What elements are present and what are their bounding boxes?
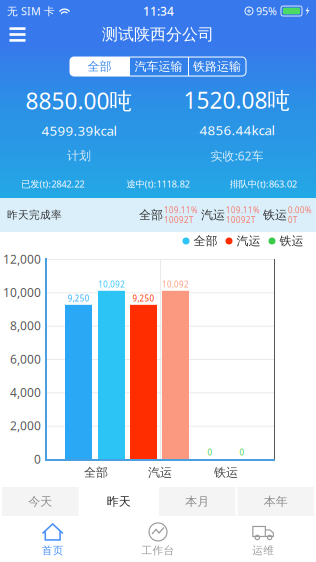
button[interactable]: 汽车运输 [129, 57, 188, 76]
staticText: 铁路运输 [193, 59, 241, 74]
staticText: 昨天完成率 [7, 208, 62, 221]
staticText: 运维 [252, 544, 274, 557]
staticText: 0 [239, 447, 244, 458]
staticText: 全部 [139, 208, 163, 222]
staticText: 铁运 [279, 234, 303, 248]
staticText: 今天 [28, 494, 52, 509]
staticText: 本年 [264, 494, 288, 509]
staticText: 无 SIM 卡 [7, 4, 55, 18]
staticText: 9,250 [67, 293, 89, 304]
staticText: 已发(t):2842.22 [21, 178, 84, 190]
button[interactable]: 首页 [0, 518, 105, 562]
staticText: 8,000 [10, 318, 41, 334]
staticText: 全部 [193, 234, 217, 248]
staticText: 10,000 [3, 284, 41, 300]
button[interactable]: 全部 [70, 57, 129, 76]
button[interactable]: Menu [1, 22, 34, 47]
staticText: 昨天 [107, 494, 131, 509]
staticText: 4599.39kcal [41, 122, 116, 139]
staticText: 全部 [84, 465, 108, 480]
staticText: 4856.44kcal [199, 121, 274, 139]
button[interactable]: 工作台 [105, 518, 211, 562]
staticText: 0T [288, 214, 297, 225]
staticText: 4,000 [10, 384, 41, 400]
staticText: 汽运 [236, 234, 260, 248]
staticText: 首页 [42, 544, 64, 557]
staticText: 本月 [185, 494, 209, 509]
staticText: 0 [34, 451, 41, 467]
staticText: 铁运 [263, 208, 287, 222]
staticText: 汽车运输 [134, 59, 182, 74]
staticText: 汽运 [148, 465, 172, 480]
staticText: 11:34 [143, 3, 174, 19]
staticText: 10,092 [162, 279, 189, 290]
staticText: 95% [256, 4, 277, 18]
button[interactable]: 运维 [211, 518, 316, 562]
staticText: 10092T [164, 214, 193, 225]
staticText: 全部 [87, 59, 111, 74]
button[interactable]: 今天 [2, 487, 78, 516]
staticText: 铁运 [214, 465, 238, 480]
button[interactable]: 本年 [237, 487, 314, 516]
staticText: 测试陕西分公司 [102, 25, 214, 44]
staticText: 8850.00吨 [25, 86, 132, 116]
staticText: 0.00% [288, 205, 312, 215]
staticText: 12,000 [3, 251, 41, 267]
staticText: 10092T [226, 214, 255, 225]
staticText: 实收:62车 [210, 148, 263, 164]
button[interactable]: 本月 [159, 487, 235, 516]
staticText: 计划 [67, 148, 91, 163]
staticText: 10,092 [98, 279, 125, 290]
staticText: 9,250 [132, 293, 154, 304]
staticText: 排队中(t):863.02 [230, 178, 297, 190]
staticText: 109.11% [226, 205, 260, 215]
staticText: 1520.08吨 [183, 85, 290, 115]
staticText: 汽运 [201, 208, 225, 222]
staticText: 0 [207, 447, 212, 458]
staticText: 工作台 [141, 544, 174, 557]
staticText: 6,000 [10, 351, 41, 367]
staticText: 途中(t):1118.82 [126, 178, 189, 190]
staticText: 2,000 [10, 418, 41, 434]
button[interactable]: 昨天 [80, 487, 157, 516]
button[interactable]: 铁路运输 [188, 57, 246, 76]
staticText: 109.11% [164, 205, 198, 215]
